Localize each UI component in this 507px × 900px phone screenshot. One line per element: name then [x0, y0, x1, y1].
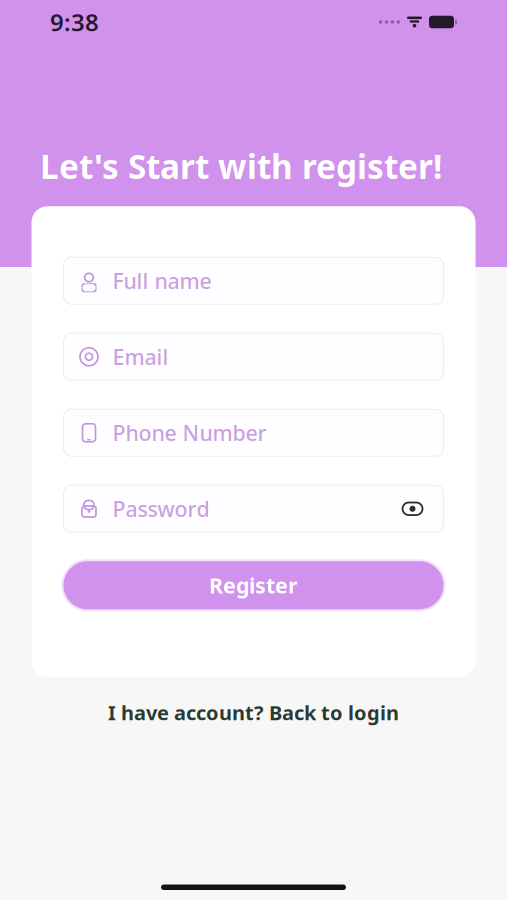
staticText: Let's Start with register! [40, 144, 442, 188]
staticText: I have account? Back to login [108, 699, 399, 726]
staticText: Register [209, 571, 298, 599]
staticText: Phone Number [112, 419, 266, 447]
button[interactable]: I have account? Back to login [96, 691, 411, 734]
staticText: Full name [112, 267, 211, 295]
staticText: Email [112, 343, 168, 371]
staticText: Password [112, 495, 209, 523]
staticText: 9:38 [50, 6, 99, 38]
button[interactable]: Register [63, 561, 443, 609]
button[interactable]: Show password [397, 494, 427, 524]
